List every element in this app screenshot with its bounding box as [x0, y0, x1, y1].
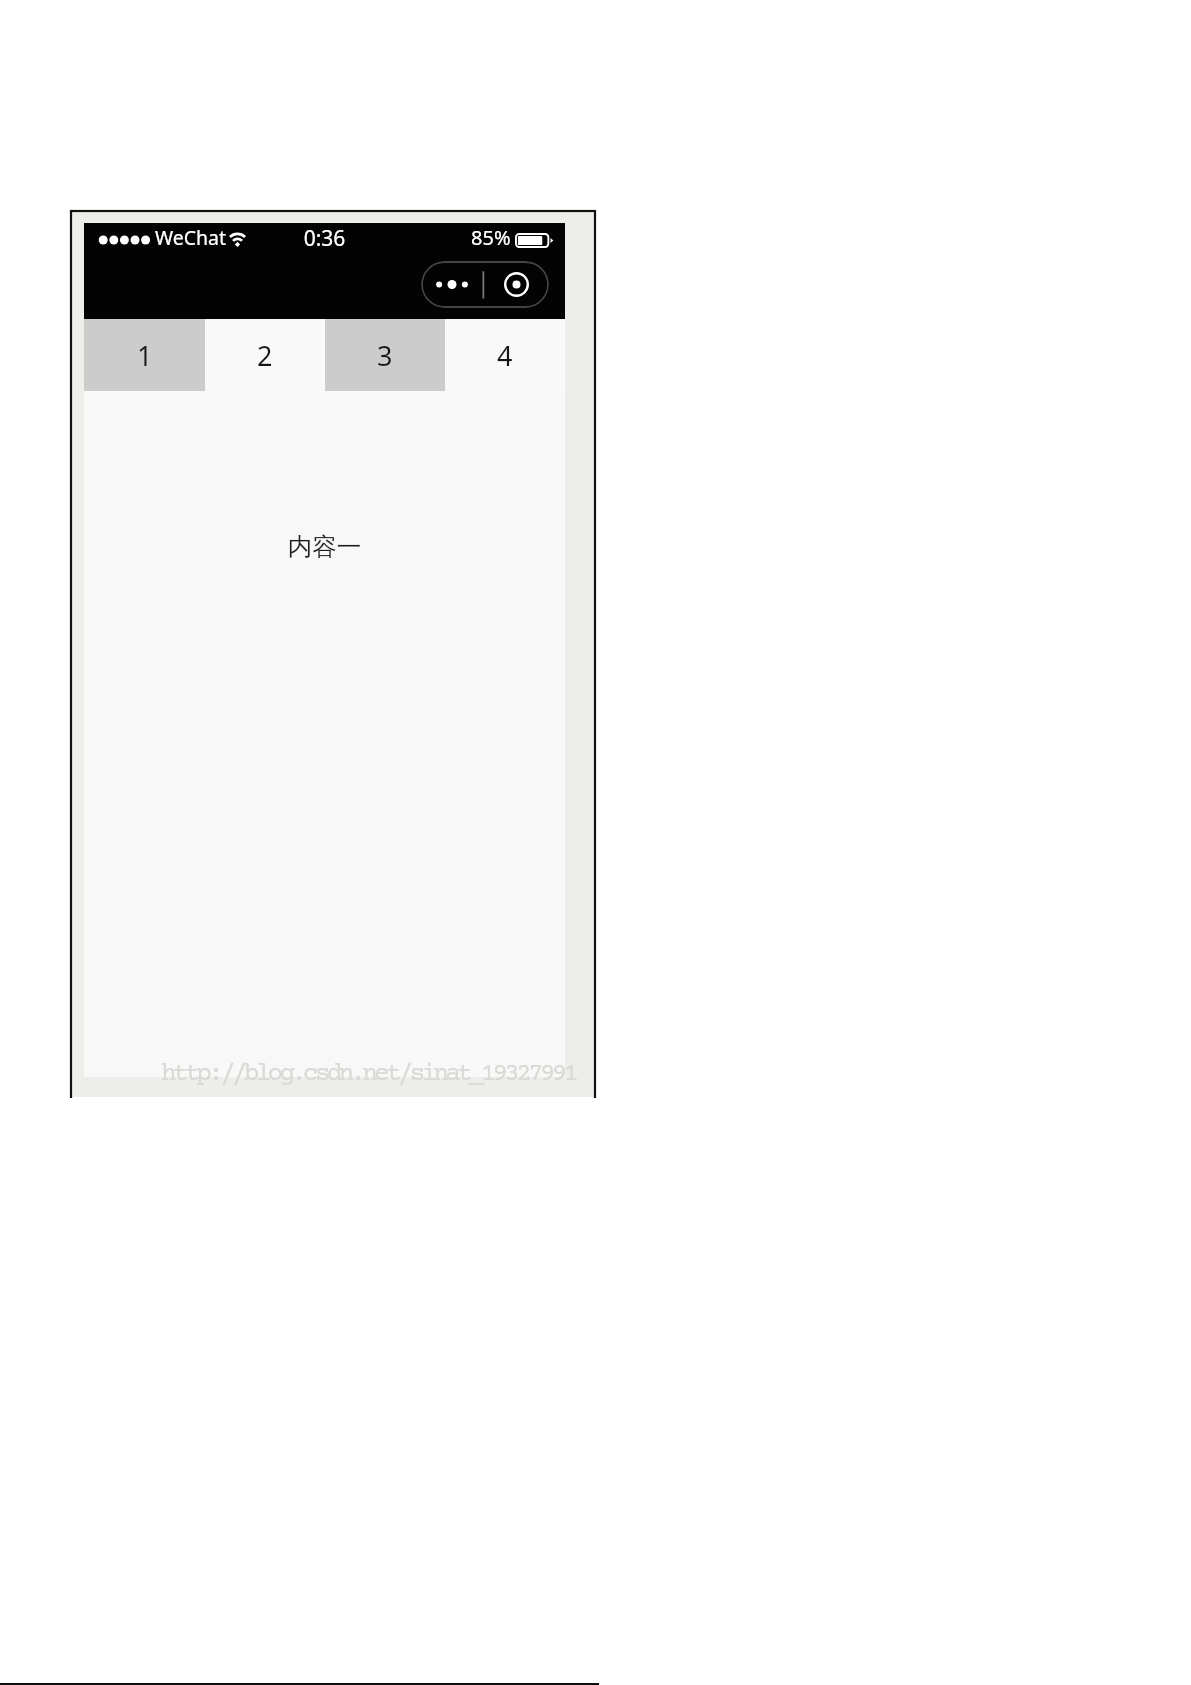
button[interactable]: 2 — [205, 319, 325, 391]
staticText: WeChat — [155, 224, 227, 251]
button[interactable]: 3 — [325, 319, 445, 391]
staticText: http://blog.csdn.net/sinat_19327991 — [161, 1060, 576, 1089]
staticText: 1 — [137, 337, 153, 374]
button[interactable]: 1 — [84, 319, 205, 391]
staticText: 4 — [497, 337, 513, 374]
button[interactable]: Close mini program — [483, 261, 549, 308]
button[interactable]: More options — [421, 261, 483, 308]
staticText: 内容一 — [84, 531, 565, 562]
button[interactable]: 4 — [445, 319, 565, 391]
staticText: 0:36 — [84, 224, 565, 253]
staticText: 2 — [257, 337, 273, 374]
staticText: 85% — [471, 224, 511, 251]
staticText: 3 — [377, 337, 393, 374]
